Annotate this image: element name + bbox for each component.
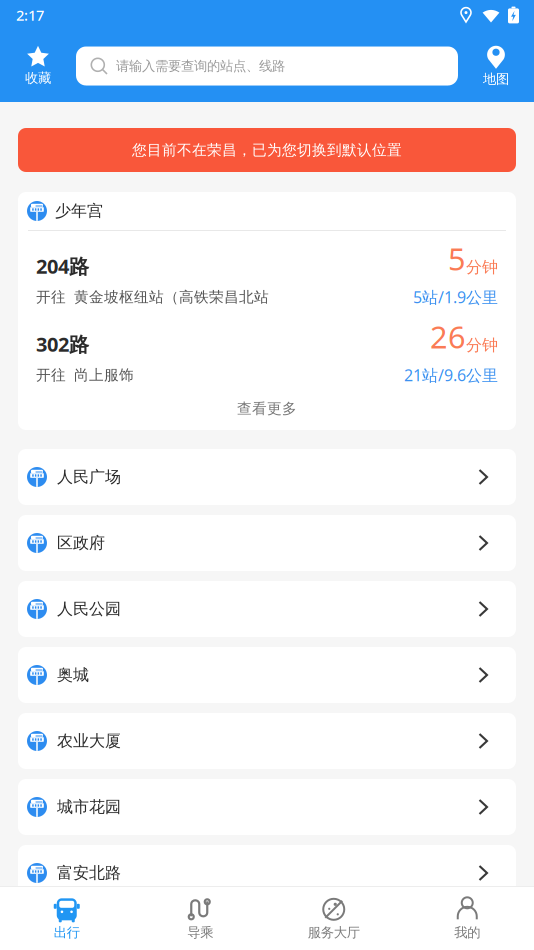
button[interactable]: 富安北路 [18,845,516,901]
staticText: 您目前不在荣昌，已为您切换到默认位置 [132,141,402,159]
staticText: 26 [430,316,466,357]
button[interactable]: 请输入需要查询的站点、线路 [76,46,458,85]
staticText: 地图 [483,71,509,87]
staticText: 开往 黄金坡枢纽站（高铁荣昌北站 [36,288,269,306]
staticText: 2:17 [16,5,44,25]
button[interactable]: 服务大厅 [267,887,400,949]
staticText: 导乘 [187,924,213,941]
button[interactable]: 导乘 [133,887,267,949]
button[interactable]: 302路 [18,309,516,387]
staticText: 人民广场 [57,467,121,487]
staticText: 我的 [454,924,480,941]
staticText: 204路 [36,253,89,279]
staticText: 富安北路 [57,863,121,883]
button[interactable]: 人民公园 [18,581,516,637]
staticText: 农业大厦 [57,731,121,751]
staticText: 出行 [54,924,80,941]
staticText: 人民公园 [57,599,121,619]
staticText: 分钟 [466,257,498,277]
button[interactable]: 奥城 [18,647,516,703]
staticText: 21站/9.6公里 [404,364,498,386]
button[interactable]: 人民广场 [18,449,516,505]
button[interactable]: 西湖郦景 [18,911,516,950]
staticText: 5 [448,238,466,279]
button[interactable]: 您目前不在荣昌，已为您切换到默认位置 [18,128,516,172]
staticText: 查看更多 [237,399,297,417]
staticText: 服务大厅 [308,924,360,941]
button[interactable]: 区政府 [18,515,516,571]
button[interactable]: 城市花园 [18,779,516,835]
button[interactable]: 农业大厦 [18,713,516,769]
staticText: 开往 尚上服饰 [36,366,134,384]
staticText: 5站/1.9公里 [413,286,498,308]
button[interactable]: 地图 [474,38,518,94]
staticText: 区政府 [57,533,105,553]
button[interactable]: 204路 [18,231,516,309]
staticText: 少年宫 [55,201,103,221]
staticText: 分钟 [466,335,498,355]
button[interactable]: 收藏 [16,38,60,94]
staticText: 西湖郦景 [57,929,121,949]
staticText: 请输入需要查询的站点、线路 [116,58,285,74]
staticText: 302路 [36,331,89,357]
staticText: 奥城 [57,665,89,685]
button[interactable]: 查看更多 [18,387,516,430]
button[interactable]: 我的 [400,887,534,949]
button[interactable]: 出行 [0,887,133,949]
staticText: 收藏 [25,70,51,86]
staticText: 城市花园 [57,797,121,817]
